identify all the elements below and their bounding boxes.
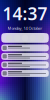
button[interactable] xyxy=(1,70,49,77)
button[interactable] xyxy=(1,44,49,51)
button[interactable] xyxy=(1,61,49,68)
staticText: 14:37 xyxy=(2,2,47,25)
button[interactable]: App suggestion xyxy=(6,35,12,41)
staticText: Monday, 14 October xyxy=(7,25,42,31)
button[interactable] xyxy=(1,53,49,60)
